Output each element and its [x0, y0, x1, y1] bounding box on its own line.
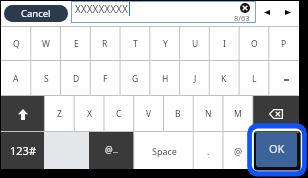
- button[interactable]: F: [90, 61, 120, 96]
- button[interactable]: E: [61, 27, 91, 61]
- button[interactable]: T: [120, 27, 150, 61]
- button[interactable]: Space: [134, 132, 194, 169]
- staticText: H: [162, 73, 169, 85]
- staticText: G: [132, 73, 139, 85]
- button[interactable]: 123#: [1, 132, 44, 169]
- staticText: .: [207, 145, 210, 157]
- button[interactable]: Shift: [1, 96, 44, 132]
- button[interactable]: Q: [1, 27, 31, 61]
- staticText: 8/63: [234, 13, 250, 23]
- staticText: P: [281, 38, 287, 50]
- button[interactable]: .: [193, 132, 223, 169]
- staticText: Cancel: [21, 7, 51, 20]
- button[interactable]: V: [134, 96, 164, 132]
- button[interactable]: M: [223, 96, 253, 132]
- staticText: N: [205, 108, 212, 120]
- staticText: S: [44, 73, 49, 85]
- staticText: W: [42, 38, 50, 50]
- button[interactable]: I: [209, 27, 239, 61]
- staticText: XXXXXXXXX: [75, 2, 128, 16]
- button[interactable]: C: [104, 96, 134, 132]
- staticText: R: [102, 38, 108, 50]
- button[interactable]: S: [31, 61, 61, 96]
- button[interactable]: K: [209, 61, 239, 96]
- staticText: U: [192, 38, 199, 50]
- button[interactable]: N: [193, 96, 223, 132]
- button[interactable]: Hyphen: [269, 61, 299, 96]
- staticText: Q: [13, 38, 20, 50]
- staticText: Space: [152, 145, 177, 157]
- staticText: @: [234, 145, 243, 157]
- button[interactable]: OK: [247, 123, 308, 178]
- staticText: @: [105, 144, 113, 156]
- button[interactable]: Cancel: [4, 5, 68, 22]
- button[interactable]: U: [180, 27, 210, 61]
- button[interactable]: L: [239, 61, 269, 96]
- staticText: B: [175, 108, 181, 120]
- button[interactable]: P: [269, 27, 299, 61]
- staticText: C: [116, 108, 122, 120]
- staticText: F: [103, 73, 108, 85]
- button[interactable]: Clear text: [240, 3, 250, 13]
- button[interactable]: XXXXXXXXX: [71, 1, 256, 23]
- button[interactable]: X: [74, 96, 104, 132]
- staticText: K: [221, 73, 227, 85]
- staticText: OK: [269, 141, 285, 156]
- button[interactable]: Backspace: [253, 96, 299, 132]
- button[interactable]: @: [223, 132, 253, 169]
- button[interactable]: R: [90, 27, 120, 61]
- staticText: O: [251, 38, 258, 50]
- staticText: I: [223, 38, 226, 50]
- button[interactable]: B: [163, 96, 193, 132]
- staticText: Y: [163, 38, 168, 50]
- button[interactable]: Z: [44, 96, 74, 132]
- staticText: T: [133, 38, 138, 50]
- button[interactable]: Y: [150, 27, 180, 61]
- staticText: X: [87, 108, 92, 120]
- staticText: M: [234, 108, 242, 120]
- button[interactable]: Move cursor left: [258, 3, 276, 21]
- staticText: 123#: [10, 143, 36, 158]
- button[interactable]: D: [61, 61, 91, 96]
- button[interactable]: G: [120, 61, 150, 96]
- staticText: A: [13, 73, 19, 85]
- button[interactable]: O: [239, 27, 269, 61]
- button[interactable]: W: [31, 27, 61, 61]
- staticText: L: [252, 73, 257, 85]
- staticText: V: [146, 108, 152, 120]
- staticText: J: [194, 73, 197, 85]
- button[interactable]: J: [180, 61, 210, 96]
- staticText: Z: [57, 108, 62, 120]
- staticText: D: [73, 73, 80, 85]
- staticText: E: [74, 38, 79, 50]
- button[interactable]: A: [1, 61, 31, 96]
- button[interactable]: Move cursor right: [279, 3, 297, 21]
- button[interactable]: H: [150, 61, 180, 96]
- button[interactable]: Email shortcut: [89, 132, 134, 169]
